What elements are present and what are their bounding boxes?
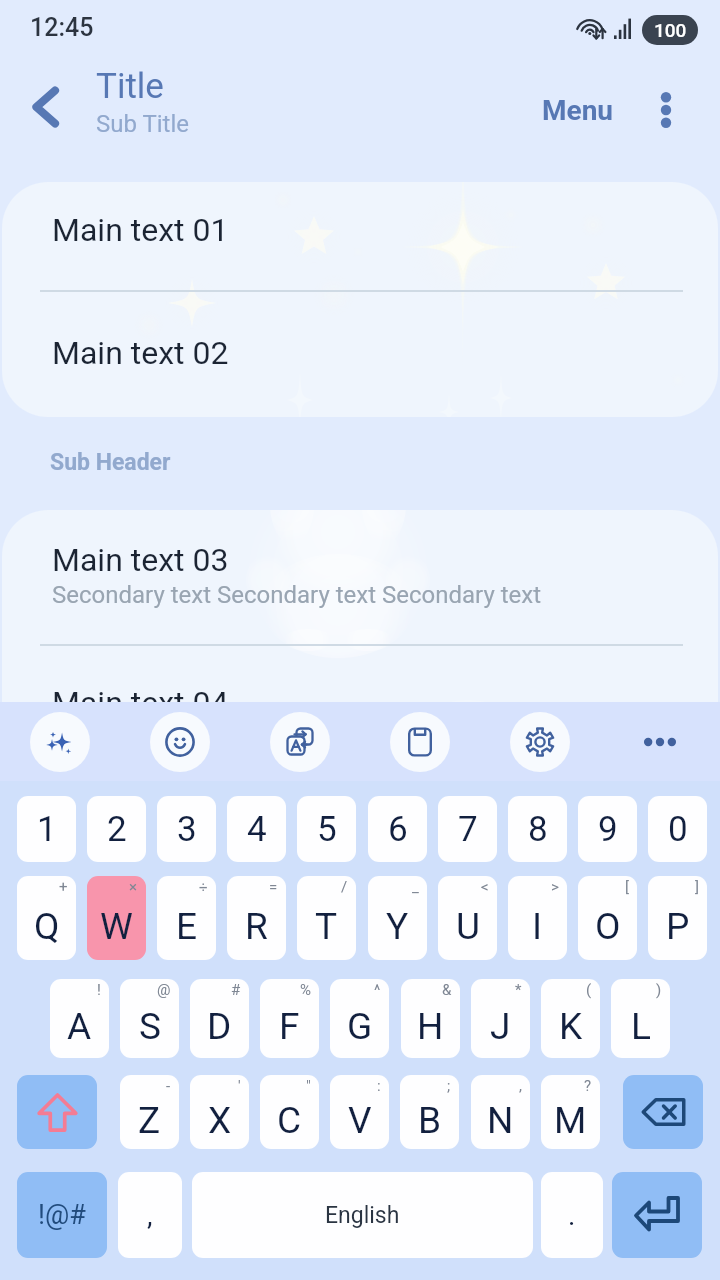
button[interactable]: G bbox=[330, 979, 389, 1058]
button[interactable]: 2 bbox=[87, 796, 146, 862]
button[interactable]: K bbox=[541, 979, 600, 1058]
button[interactable]: X bbox=[190, 1075, 249, 1149]
button[interactable]: English bbox=[192, 1172, 533, 1258]
staticText: Main text 01 bbox=[52, 211, 229, 249]
staticText: ^ bbox=[374, 981, 381, 999]
button[interactable]: E bbox=[157, 876, 216, 960]
button[interactable]: Backspace bbox=[623, 1075, 703, 1149]
button[interactable]: O bbox=[578, 876, 637, 960]
button[interactable]: Back bbox=[13, 75, 77, 139]
staticText: 5 bbox=[317, 809, 337, 850]
button[interactable]: F bbox=[260, 979, 319, 1058]
button[interactable]: Keyboard tool 1 bbox=[0, 702, 120, 781]
button[interactable]: . bbox=[541, 1172, 603, 1258]
button[interactable]: V bbox=[330, 1075, 389, 1149]
staticText: L bbox=[631, 1005, 651, 1048]
button[interactable]: , bbox=[118, 1172, 182, 1258]
staticText: , bbox=[519, 1077, 522, 1095]
staticText: Main text 03 bbox=[52, 541, 229, 579]
button[interactable]: I bbox=[508, 876, 567, 960]
staticText: ÷ bbox=[199, 878, 208, 896]
staticText: Sub Title bbox=[96, 110, 190, 138]
button[interactable]: R bbox=[227, 876, 286, 960]
button[interactable]: N bbox=[471, 1075, 530, 1149]
staticText: - bbox=[166, 1077, 171, 1095]
button[interactable]: 5 bbox=[297, 796, 356, 862]
button[interactable]: 8 bbox=[508, 796, 567, 862]
button[interactable]: 3 bbox=[157, 796, 216, 862]
staticText: " bbox=[306, 1077, 311, 1095]
button[interactable]: Keyboard tool 5 bbox=[480, 702, 600, 781]
staticText: !@# bbox=[38, 1199, 86, 1231]
button[interactable]: Keyboard tool 2 bbox=[120, 702, 240, 781]
button[interactable]: Z bbox=[120, 1075, 179, 1149]
button[interactable]: D bbox=[190, 979, 249, 1058]
staticText: G bbox=[347, 1005, 373, 1048]
button[interactable]: W bbox=[87, 876, 146, 960]
staticText: Main text 04 bbox=[52, 684, 229, 722]
staticText: * bbox=[515, 981, 522, 999]
button[interactable]: Main text 03 bbox=[2, 510, 718, 645]
staticText: < bbox=[481, 878, 489, 896]
staticText: E bbox=[176, 905, 198, 948]
staticText: @ bbox=[157, 981, 171, 999]
staticText: _ bbox=[412, 878, 419, 896]
staticText: = bbox=[269, 878, 278, 896]
button[interactable]: Menu bbox=[528, 82, 628, 138]
button[interactable]: Main text 02 bbox=[2, 291, 718, 417]
button[interactable]: T bbox=[297, 876, 356, 960]
staticText: 8 bbox=[528, 809, 548, 850]
button[interactable]: U bbox=[438, 876, 497, 960]
staticText: F bbox=[279, 1005, 300, 1048]
staticText: Title bbox=[96, 66, 164, 107]
staticText: 7 bbox=[458, 809, 478, 850]
staticText: × bbox=[129, 878, 138, 896]
button[interactable]: 0 bbox=[648, 796, 707, 862]
button[interactable]: L bbox=[611, 979, 670, 1058]
staticText: 3 bbox=[177, 809, 197, 850]
button[interactable]: More keyboard options bbox=[600, 702, 720, 781]
staticText: : bbox=[377, 1077, 381, 1095]
staticText: X bbox=[208, 1099, 232, 1142]
button[interactable]: A bbox=[50, 979, 109, 1058]
staticText: V bbox=[348, 1099, 372, 1142]
staticText: R bbox=[245, 905, 268, 948]
staticText: ] bbox=[695, 878, 699, 896]
staticText: [ bbox=[625, 878, 629, 896]
button[interactable]: Q bbox=[17, 876, 76, 960]
button[interactable]: Main text 01 bbox=[2, 182, 718, 290]
staticText: % bbox=[300, 981, 311, 999]
button[interactable]: 6 bbox=[368, 796, 427, 862]
button[interactable]: P bbox=[648, 876, 707, 960]
button[interactable]: More options bbox=[638, 82, 694, 138]
button[interactable]: 4 bbox=[227, 796, 286, 862]
button[interactable]: 1 bbox=[17, 796, 76, 862]
staticText: H bbox=[417, 1005, 444, 1048]
button[interactable]: Main text 04 bbox=[2, 646, 718, 770]
button[interactable]: Keyboard tool 3 bbox=[240, 702, 360, 781]
button[interactable]: Shift bbox=[17, 1075, 97, 1149]
staticText: O bbox=[595, 905, 621, 948]
staticText: S bbox=[139, 1005, 161, 1048]
staticText: ! bbox=[97, 981, 101, 999]
button[interactable]: H bbox=[401, 979, 460, 1058]
staticText: B bbox=[418, 1099, 442, 1142]
button[interactable]: B bbox=[400, 1075, 459, 1149]
staticText: P bbox=[666, 905, 690, 948]
staticText: N bbox=[487, 1099, 514, 1142]
button[interactable]: Enter bbox=[612, 1172, 702, 1258]
button[interactable]: M bbox=[541, 1075, 600, 1149]
button[interactable]: Y bbox=[368, 876, 427, 960]
staticText: ? bbox=[584, 1077, 592, 1095]
staticText: / bbox=[341, 878, 348, 896]
staticText: ( bbox=[586, 981, 592, 999]
button[interactable]: 9 bbox=[578, 796, 637, 862]
staticText: Z bbox=[138, 1099, 161, 1142]
staticText: K bbox=[559, 1005, 583, 1048]
button[interactable]: Keyboard tool 4 bbox=[360, 702, 480, 781]
button[interactable]: S bbox=[120, 979, 179, 1058]
button[interactable]: C bbox=[260, 1075, 319, 1149]
button[interactable]: 7 bbox=[438, 796, 497, 862]
button[interactable]: J bbox=[471, 979, 530, 1058]
button[interactable]: !@# bbox=[17, 1172, 107, 1258]
